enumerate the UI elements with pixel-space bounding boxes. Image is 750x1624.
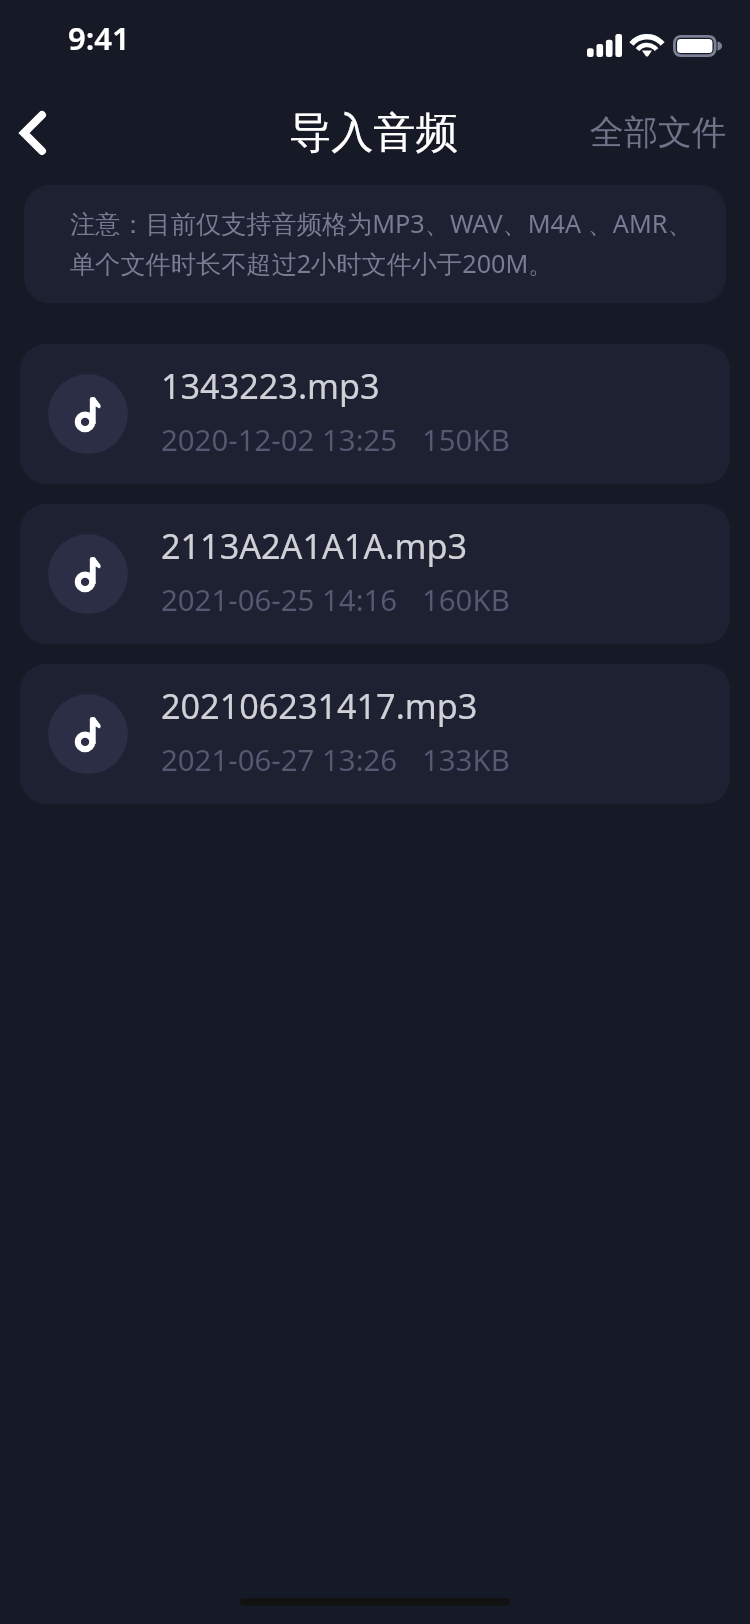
staticText: 133KB: [422, 740, 510, 780]
staticText: 注意：目前仅支持音频格为MP3、WAV、M4A 、AMR、 单个文件时长不超过2…: [70, 203, 706, 283]
staticText: 2113A2A1A1A.mp3: [161, 522, 467, 569]
staticText: 2021-06-27 13:26: [161, 740, 398, 780]
staticText: 2020-12-02 13:25: [161, 420, 398, 460]
button[interactable]: 2113A2A1A1A.mp3: [20, 504, 730, 644]
staticText: 202106231417.mp3: [161, 682, 478, 729]
staticText: 全部文件: [590, 111, 726, 154]
button[interactable]: Back: [0, 89, 77, 177]
button[interactable]: 全部文件: [566, 102, 750, 177]
staticText: 导入音频: [289, 106, 458, 159]
staticText: 160KB: [422, 580, 510, 620]
button[interactable]: 1343223.mp3: [20, 344, 730, 484]
staticText: 150KB: [422, 420, 510, 460]
button[interactable]: 202106231417.mp3: [20, 664, 730, 804]
staticText: 2021-06-25 14:16: [161, 580, 398, 620]
staticText: 9:41: [68, 17, 130, 59]
staticText: 1343223.mp3: [161, 362, 380, 409]
